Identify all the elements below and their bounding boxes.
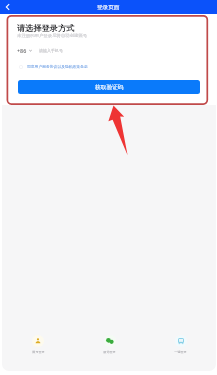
staticText: 登录页面 (97, 4, 120, 11)
staticText: 请输入手机号 (39, 48, 63, 53)
button[interactable]: 微信登录 (74, 335, 145, 354)
button[interactable]: 一键登录 (145, 335, 216, 354)
staticText: 一键登录 (174, 350, 187, 354)
staticText: 微信登录 (103, 350, 116, 354)
staticText: 未注册的用户登录后将自动创建账号 (17, 33, 88, 39)
staticText: 账号登录 (32, 350, 45, 354)
button[interactable]: 账号登录 (2, 335, 74, 354)
staticText: 获取验证码 (95, 84, 124, 91)
button[interactable]: 同意用户服务协议以及隐私政策条款 (19, 64, 88, 69)
button[interactable]: Back (0, 0, 14, 14)
staticText: 请选择登录方式 (17, 23, 75, 33)
staticText: +86 (17, 47, 27, 54)
staticText: 同意用户服务协议以及隐私政策条款 (27, 64, 88, 69)
button[interactable]: 获取验证码 (18, 80, 200, 94)
